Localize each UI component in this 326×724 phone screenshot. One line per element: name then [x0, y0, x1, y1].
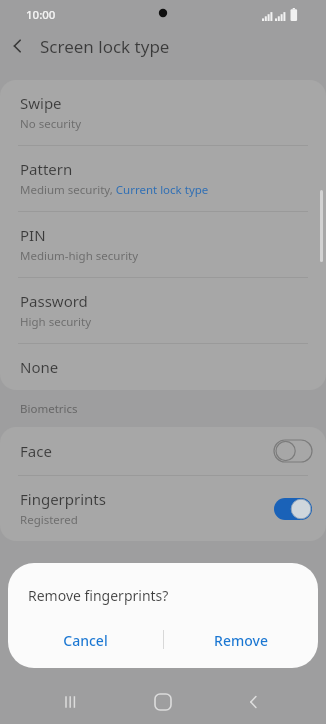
button[interactable]: Fingerprints: [0, 476, 326, 541]
staticText: Password: [20, 291, 88, 311]
staticText: Cancel: [63, 631, 108, 650]
staticText: No security: [20, 116, 82, 132]
staticText: Screen lock type: [40, 35, 170, 58]
staticText: Medium security, Current lock type: [20, 182, 209, 198]
staticText: Medium-high security: [20, 248, 139, 264]
button[interactable]: Pattern: [0, 146, 326, 211]
button[interactable]: Navigate up: [0, 28, 36, 64]
button[interactable]: Remove: [163, 621, 318, 659]
button[interactable]: On: [274, 498, 312, 520]
button[interactable]: Face: [0, 427, 326, 475]
staticText: 10:00: [26, 7, 56, 23]
button[interactable]: Password: [0, 278, 326, 343]
button[interactable]: Home: [141, 680, 185, 724]
button[interactable]: Recent apps: [50, 680, 94, 724]
staticText: Face: [20, 441, 52, 461]
staticText: Fingerprints: [20, 489, 106, 509]
staticText: Remove fingerprints?: [28, 586, 169, 605]
button[interactable]: Off: [274, 440, 312, 462]
staticText: None: [20, 357, 59, 377]
staticText: Biometrics: [20, 401, 78, 417]
staticText: Pattern: [20, 159, 73, 179]
staticText: Registered: [20, 512, 78, 528]
staticText: Swipe: [20, 93, 62, 113]
button[interactable]: Swipe: [0, 80, 326, 145]
staticText: PIN: [20, 225, 46, 245]
button[interactable]: Cancel: [8, 621, 163, 659]
button[interactable]: None: [0, 344, 326, 390]
button[interactable]: PIN: [0, 212, 326, 277]
staticText: High security: [20, 314, 92, 330]
staticText: Remove: [214, 631, 268, 650]
button[interactable]: Back: [232, 680, 276, 724]
